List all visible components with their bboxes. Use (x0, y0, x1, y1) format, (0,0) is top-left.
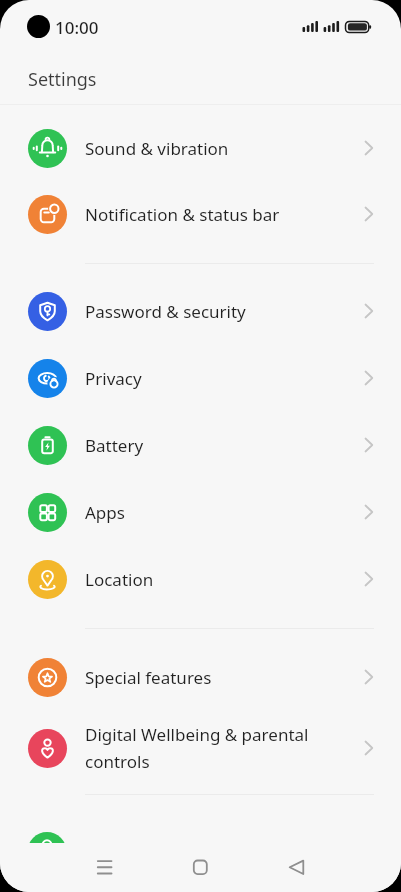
button[interactable]: Digital Wellbeing & parental (0, 708, 401, 788)
button[interactable]: Notification & status bar (0, 181, 401, 247)
staticText: Settings (28, 67, 97, 92)
button[interactable]: Special features (0, 644, 401, 710)
button[interactable] (76, 843, 132, 891)
staticText: Sound & vibration (85, 137, 229, 160)
staticText: Notification & status bar (85, 203, 280, 226)
button[interactable]: Password & security (0, 278, 401, 344)
button[interactable] (172, 843, 228, 891)
staticText: Special features (85, 666, 212, 689)
staticText: Digital Wellbeing & parental (85, 723, 309, 746)
button[interactable]: Apps (0, 479, 401, 545)
staticText: 10:00 (55, 16, 99, 39)
staticText: Privacy (85, 367, 142, 390)
staticText: Apps (85, 501, 125, 524)
button[interactable]: Privacy (0, 345, 401, 411)
staticText: controls (85, 750, 150, 773)
button[interactable]: Sound & vibration (0, 115, 401, 181)
staticText: Location (85, 568, 154, 591)
staticText: Battery (85, 434, 144, 457)
staticText: Password & security (85, 300, 246, 323)
button[interactable]: Location (0, 546, 401, 612)
button[interactable] (269, 843, 325, 891)
button[interactable]: Battery (0, 412, 401, 478)
